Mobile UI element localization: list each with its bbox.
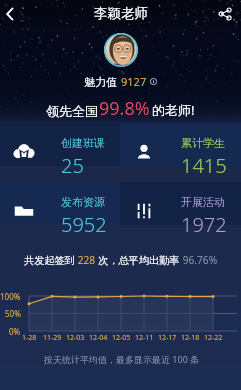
button[interactable]: 累计学生: [120, 123, 241, 166]
staticText: 开展活动: [181, 195, 225, 209]
staticText: 12-03: [66, 333, 85, 343]
staticText: 99.8%: [99, 96, 150, 121]
staticText: 按天统计平均值，最多显示最近 100 条: [44, 353, 200, 365]
staticText: 1972: [181, 211, 227, 238]
staticText: 11-29: [43, 333, 62, 343]
staticText: 12-18: [181, 333, 200, 343]
staticText: 创建班课: [61, 136, 105, 150]
staticText: 1415: [181, 152, 227, 179]
button[interactable]: Share: [213, 2, 237, 26]
staticText: 50%: [5, 308, 21, 319]
staticText: 25: [61, 152, 84, 179]
staticText: 12-11: [135, 333, 154, 343]
button[interactable]: Back: [0, 1, 23, 27]
staticText: 的老师!: [152, 101, 195, 119]
button[interactable]: 开展活动: [120, 182, 241, 225]
staticText: 魅力值: [84, 75, 117, 89]
staticText: 累计学生: [181, 136, 225, 150]
staticText: 96.76%: [180, 253, 218, 267]
staticText: 发布资源: [61, 195, 105, 209]
button[interactable]: [104, 33, 138, 67]
staticText: 12-22: [204, 333, 223, 343]
staticText: 228: [75, 253, 98, 267]
button[interactable]: 发布资源: [0, 182, 120, 225]
staticText: 100%: [0, 291, 21, 302]
staticText: 12-04: [89, 333, 108, 343]
staticText: 5952: [61, 211, 107, 238]
button[interactable]: 创建班课: [0, 123, 120, 166]
staticText: 共发起签到: [24, 254, 75, 267]
staticText: 领先全国: [46, 103, 98, 119]
staticText: 李颖老师: [94, 5, 148, 22]
staticText: 次，总平均出勤率: [98, 254, 180, 267]
staticText: 9127: [121, 74, 147, 89]
staticText: 12-05: [112, 333, 131, 343]
staticText: 0%: [9, 326, 21, 337]
staticText: 12-17: [158, 333, 177, 343]
staticText: 1-28: [22, 333, 37, 343]
